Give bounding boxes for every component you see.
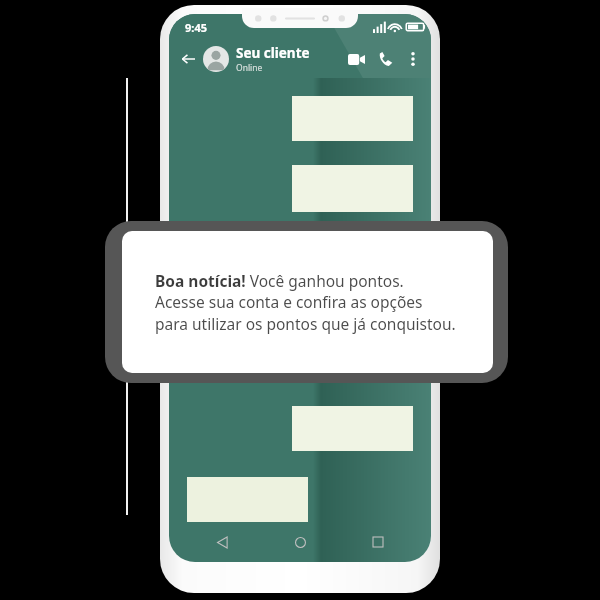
staticText: 9:45 <box>185 20 207 35</box>
staticText: Boa notícia! Você ganhou pontos. Acesse … <box>155 270 456 334</box>
button[interactable]: Voice call <box>374 47 398 71</box>
button[interactable]: Video call <box>344 47 368 71</box>
button[interactable]: Back <box>211 531 233 553</box>
button[interactable]: More options <box>403 49 423 69</box>
staticText: Seu cliente <box>236 44 310 62</box>
button[interactable]: Seu cliente <box>236 44 344 74</box>
staticText: Online <box>236 62 263 74</box>
button[interactable]: Home <box>289 531 311 553</box>
button[interactable]: Back <box>177 48 199 70</box>
button[interactable]: Boa notícia! Você ganhou pontos. Acesse … <box>122 231 493 373</box>
button[interactable]: Recent apps <box>367 531 389 553</box>
button[interactable]: Contact photo <box>203 46 229 72</box>
